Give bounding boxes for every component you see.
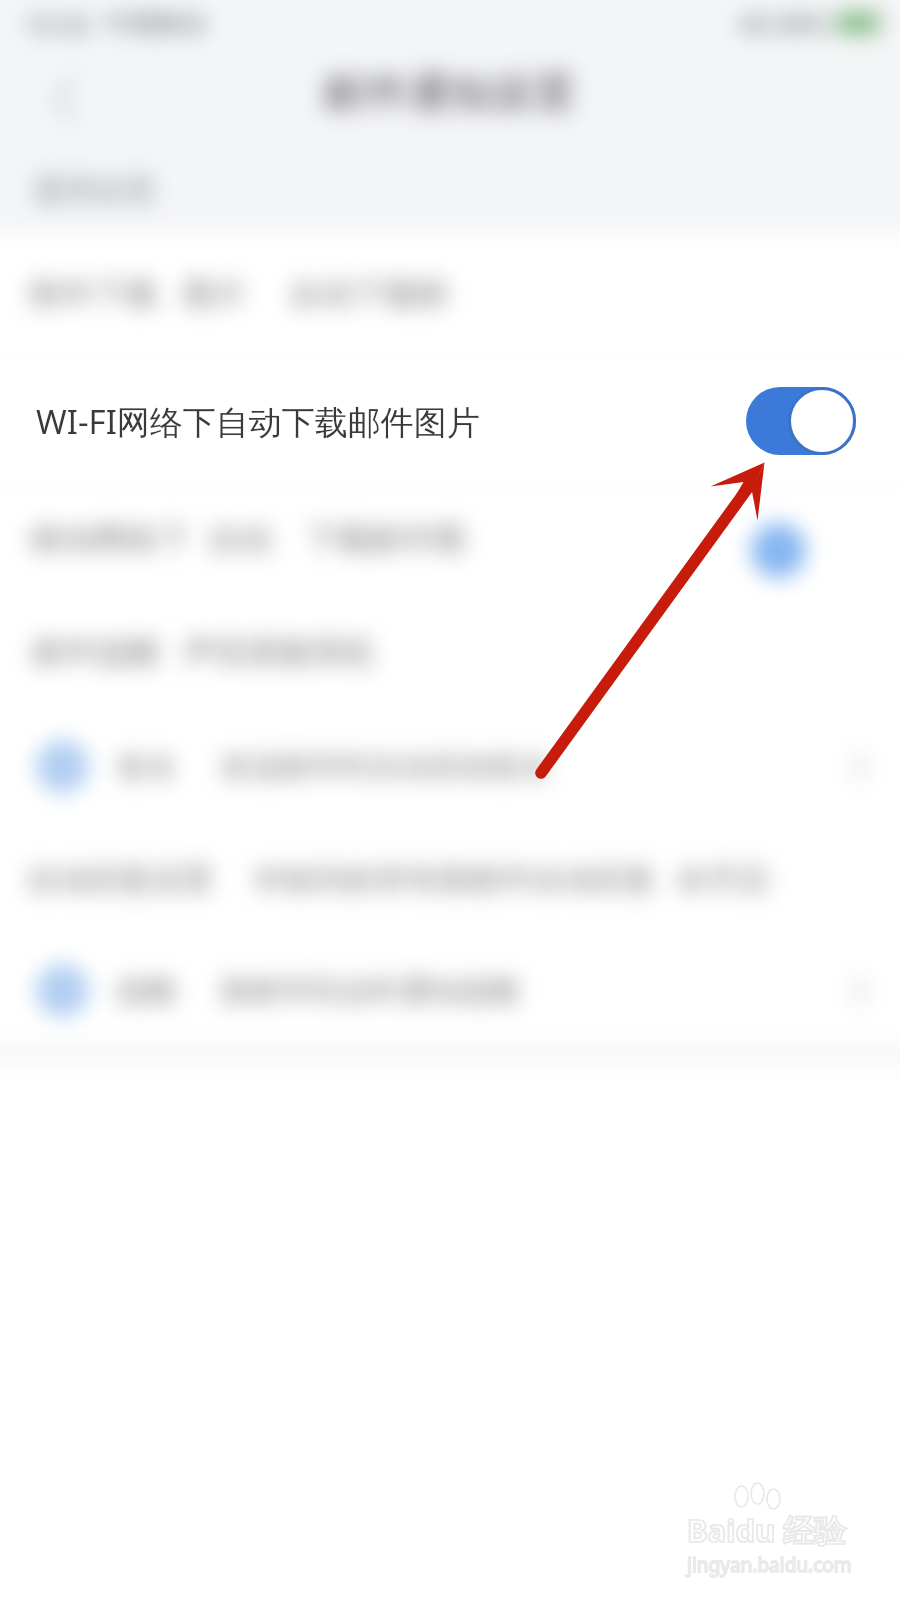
button[interactable]: Auto download images on Wi-Fi [746,387,856,455]
button[interactable]: 提醒 [0,935,900,1046]
staticText: 自动 [208,519,272,559]
staticText: 通用设置 [32,171,156,210]
staticText: 附件下载 [30,274,158,314]
staticText: 签名 [117,748,177,786]
staticText: 发送邮件时自动添加签名 [220,748,550,786]
button[interactable]: 邮件提醒 [0,595,900,709]
staticText: 声音跟随系统 [183,632,375,672]
button[interactable]: 附件下载 [0,233,900,360]
staticText: 图片 [183,274,247,314]
button[interactable]: Toggle [751,523,806,578]
button[interactable]: 签名 [0,709,900,824]
staticText: 未开启 [676,860,769,899]
staticText: 移动网络下 [30,519,190,559]
staticText: 对收到的所有新邮件自动回复 [253,860,656,899]
staticText: 下载邮件图 [306,519,466,559]
staticText: WI-FI网络下自动下载邮件图片 [36,399,480,444]
button[interactable]: 自动回复设置 [0,824,900,935]
button[interactable]: 移动网络下 [0,483,900,595]
staticText: jingyan.baidu.com [687,1552,852,1578]
staticText: 自动回复设置 [27,860,213,899]
staticText: 10:32 [24,6,91,41]
staticText: 邮件通知设置 [324,67,576,120]
staticText: 提醒 [117,972,177,1010]
staticText: 新邮件到达时通知提醒 [220,972,520,1010]
staticText: 自动下载附 [289,274,449,314]
button[interactable]: WI-FI网络下自动下载邮件图片 [0,360,900,482]
staticText: Baidu 经验 [687,1509,846,1551]
staticText: 4G 86% [739,6,828,40]
staticText: 邮件提醒 [33,632,161,672]
staticText: 中国移动 [105,8,205,39]
